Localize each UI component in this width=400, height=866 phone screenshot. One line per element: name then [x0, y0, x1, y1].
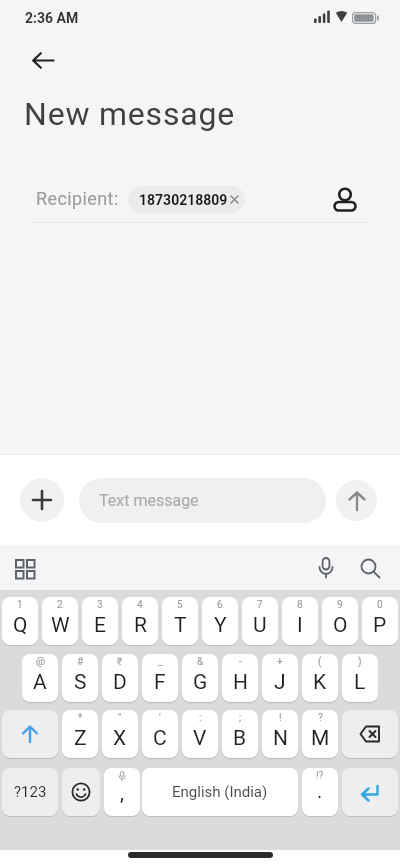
staticText: H	[233, 670, 248, 695]
button[interactable]: ,	[104, 768, 140, 816]
staticText: )	[358, 656, 362, 668]
staticText: 9	[337, 599, 343, 611]
staticText: S	[74, 670, 87, 695]
staticText: U	[253, 613, 267, 638]
button[interactable]: !?	[302, 768, 338, 816]
button[interactable]: 3	[82, 597, 118, 645]
staticText: !?	[316, 770, 324, 782]
button[interactable]	[342, 768, 398, 816]
button[interactable]	[330, 182, 360, 218]
staticText: 1	[17, 599, 23, 611]
staticText: 2:36 AM	[25, 10, 79, 26]
staticText: @	[36, 656, 45, 668]
staticText: P	[373, 613, 387, 638]
button[interactable]	[20, 478, 64, 522]
staticText: ?	[318, 712, 323, 724]
button[interactable]	[358, 556, 382, 580]
button[interactable]: 18730218809	[128, 186, 245, 213]
staticText: !	[279, 712, 282, 724]
staticText: A	[33, 670, 47, 695]
staticText: 4	[137, 599, 143, 611]
button[interactable]: _	[142, 654, 178, 702]
button[interactable]	[62, 768, 100, 816]
button[interactable]: English (India)	[142, 768, 298, 816]
button[interactable]: :	[182, 710, 218, 758]
staticText: G	[193, 670, 208, 695]
staticText: -	[239, 656, 242, 668]
staticText: R	[134, 613, 147, 638]
staticText: I	[297, 613, 303, 638]
button[interactable]: -	[222, 654, 258, 702]
staticText: K	[313, 670, 327, 695]
staticText: B	[233, 726, 247, 751]
button[interactable]: Text message	[79, 478, 326, 523]
button[interactable]: 4	[122, 597, 158, 645]
button[interactable]: #	[62, 654, 98, 702]
button[interactable]	[314, 556, 338, 580]
button[interactable]	[26, 47, 62, 75]
staticText: ,	[120, 781, 124, 804]
staticText: Recipient:	[36, 188, 119, 209]
staticText: V	[193, 726, 207, 751]
button[interactable]: ;	[222, 710, 258, 758]
staticText: ?123	[14, 783, 47, 801]
button[interactable]	[12, 556, 36, 580]
staticText: :	[199, 712, 202, 724]
staticText: X	[113, 726, 127, 751]
staticText: .	[317, 779, 323, 802]
staticText: J	[274, 670, 286, 695]
button[interactable]	[2, 710, 58, 758]
staticText: #	[77, 656, 84, 668]
staticText: D	[113, 670, 127, 695]
staticText: F	[154, 670, 166, 695]
staticText: N	[273, 726, 288, 751]
staticText: ;	[239, 712, 242, 724]
staticText: (	[318, 656, 322, 668]
staticText: ₹	[117, 656, 123, 668]
button[interactable]: ₹	[102, 654, 138, 702]
staticText: &	[197, 656, 204, 668]
staticText: "	[118, 712, 122, 724]
staticText: Z	[74, 726, 87, 751]
staticText: E	[94, 613, 106, 638]
staticText: 6	[217, 599, 223, 611]
button[interactable]: +	[262, 654, 298, 702]
button[interactable]: @	[22, 654, 58, 702]
staticText: 18730218809	[139, 192, 228, 208]
button[interactable]: 6	[202, 597, 238, 645]
button[interactable]: &	[182, 654, 218, 702]
button[interactable]: !	[262, 710, 298, 758]
staticText: English (India)	[172, 783, 268, 801]
button[interactable]	[342, 710, 398, 758]
staticText: New message	[24, 95, 235, 133]
staticText: '	[159, 712, 161, 724]
button[interactable]: (	[302, 654, 338, 702]
button[interactable]: 5	[162, 597, 198, 645]
staticText: 7	[257, 599, 263, 611]
button[interactable]: *	[62, 710, 98, 758]
button[interactable]: 8	[282, 597, 318, 645]
staticText: Text message	[99, 491, 199, 510]
button[interactable]: "	[102, 710, 138, 758]
staticText: W	[51, 613, 70, 638]
staticText: 3	[97, 599, 103, 611]
staticText: *	[78, 712, 83, 724]
button[interactable]: ?	[302, 710, 338, 758]
button[interactable]: 1	[2, 597, 38, 645]
button[interactable]: 0	[362, 597, 398, 645]
button[interactable]: )	[342, 654, 378, 702]
staticText: Y	[214, 613, 227, 638]
staticText: _	[158, 656, 163, 668]
button[interactable]: '	[142, 710, 178, 758]
staticText: 0	[377, 599, 383, 611]
staticText: M	[311, 726, 330, 751]
staticText: Q	[13, 613, 28, 638]
button[interactable]: 9	[322, 597, 358, 645]
button[interactable]	[336, 480, 377, 521]
staticText: L	[354, 670, 366, 695]
button[interactable]: 7	[242, 597, 278, 645]
button[interactable]: ?123	[2, 768, 58, 816]
staticText: C	[153, 726, 167, 751]
staticText: 5	[177, 599, 183, 611]
button[interactable]: 2	[42, 597, 78, 645]
